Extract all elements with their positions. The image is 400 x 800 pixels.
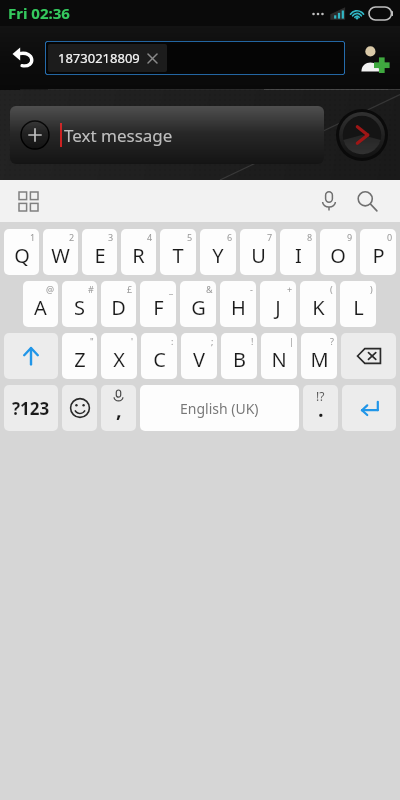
button[interactable]: 4 [121,229,156,275]
staticText: Y [212,242,224,269]
button[interactable]: " [62,333,97,379]
button[interactable]: & [180,281,216,327]
staticText: U [251,242,266,269]
button[interactable]: ; [181,333,217,379]
button[interactable]: 8 [280,229,316,275]
button[interactable]: ?123 [4,385,58,431]
staticText: L [353,294,364,321]
button[interactable]: 1 [4,229,39,275]
staticText: I [295,242,302,269]
staticText: ' [131,335,134,347]
button[interactable]: ( [300,281,336,327]
staticText: K [312,294,325,321]
staticText: W [51,242,70,269]
staticText: 2 [69,231,75,243]
button[interactable]: 6 [200,229,236,275]
staticText: B [233,346,246,373]
button[interactable]: @ [23,281,58,327]
button[interactable]: Send [334,107,390,163]
button[interactable]: | [261,333,297,379]
staticText: 4 [147,231,153,243]
staticText: R [132,242,145,269]
staticText: 3 [108,231,114,243]
button[interactable]: Shift [4,333,58,379]
staticText: 18730218809 [58,49,140,67]
staticText: H [231,294,246,321]
staticText: " [90,335,94,347]
staticText: X [113,346,125,373]
staticText: ! [251,335,254,347]
staticText: A [34,294,47,321]
staticText: 1 [30,231,36,243]
button[interactable]: Add attachment [20,120,50,150]
button[interactable]: Add attachment [10,106,324,164]
staticText: - [250,283,253,295]
button[interactable]: Search [348,182,386,220]
staticText: ; [211,335,214,347]
staticText: & [206,283,213,295]
button[interactable]: !? [303,385,338,431]
staticText: 8 [307,231,313,243]
button[interactable]: Keyboard menu [12,185,44,217]
staticText: O [330,242,346,269]
staticText: | [289,335,294,347]
button[interactable]: £ [101,281,136,327]
staticText: @ [46,283,55,295]
staticText: # [88,283,94,295]
button[interactable]: # [62,281,97,327]
staticText: _ [169,283,173,295]
staticText: Fri 02:36 [8,3,70,23]
button[interactable]: , [101,385,136,431]
button[interactable]: English (UK) [140,385,299,431]
staticText: £ [127,283,133,295]
staticText: F [153,294,164,321]
staticText: 7 [267,231,273,243]
staticText: . [318,396,324,423]
button[interactable]: - [220,281,256,327]
button[interactable]: 0 [360,229,396,275]
button[interactable]: ? [301,333,337,379]
button[interactable]: Enter [342,385,396,431]
staticText: 5 [187,231,193,243]
button[interactable]: 9 [320,229,356,275]
button[interactable]: 7 [240,229,276,275]
staticText: P [372,242,385,269]
staticText: ? [330,335,334,347]
button[interactable]: 3 [82,229,117,275]
staticText: E [94,242,106,269]
staticText: + [287,283,293,295]
button[interactable]: Back [4,38,44,78]
staticText: ) [370,283,373,295]
staticText: : [171,335,174,347]
button[interactable]: : [141,333,177,379]
button[interactable]: 2 [43,229,78,275]
staticText: 6 [227,231,233,243]
button[interactable]: ' [101,333,137,379]
staticText: , [116,396,122,423]
staticText: Text message [64,124,173,147]
staticText: Q [14,242,30,269]
staticText: T [172,242,184,269]
button[interactable]: Add contact [352,36,396,80]
button[interactable]: 5 [160,229,196,275]
button[interactable]: Backspace [341,333,396,379]
staticText: !? [316,388,325,404]
button[interactable]: 18730218809 [58,44,157,72]
staticText: 9 [347,231,353,243]
button[interactable]: + [260,281,296,327]
button[interactable]: Emoji [62,385,97,431]
staticText: English (UK) [180,399,259,418]
button[interactable]: ! [221,333,257,379]
button[interactable]: 18730218809 [45,41,345,75]
staticText: V [193,346,205,373]
staticText: 0 [387,231,393,243]
staticText: ?123 [12,397,50,420]
button[interactable]: Voice input [310,182,348,220]
staticText: N [271,346,287,373]
button[interactable]: _ [140,281,176,327]
button[interactable]: ) [340,281,376,327]
staticText: J [275,294,281,321]
staticText: M [310,346,329,373]
staticText: S [74,294,85,321]
staticText: G [191,294,206,321]
